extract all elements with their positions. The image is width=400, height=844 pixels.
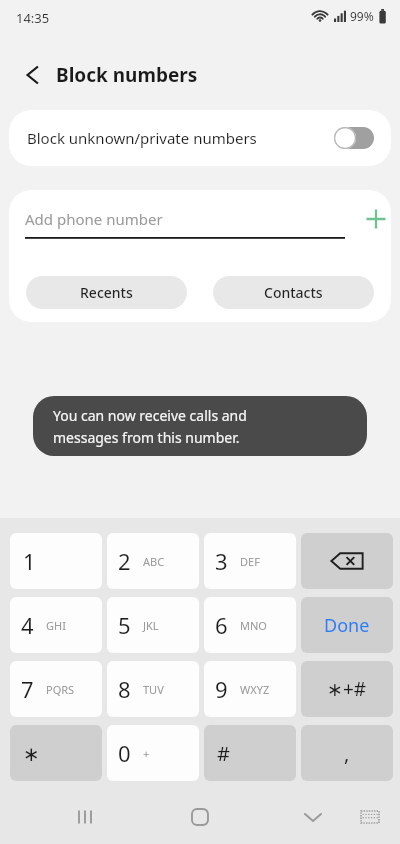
staticText: 14:35	[16, 9, 50, 27]
button[interactable]: Home	[183, 802, 217, 832]
button[interactable]: Back	[16, 58, 50, 92]
staticText: GHI	[46, 618, 66, 633]
staticText: 3	[215, 546, 228, 576]
staticText: ∗	[23, 742, 40, 765]
button[interactable]: Change keyboard	[355, 802, 385, 832]
staticText: Recents	[80, 283, 133, 302]
button[interactable]: Block unknown/private numbers	[9, 110, 391, 166]
button[interactable]: Recents	[68, 802, 102, 832]
button[interactable]: 9	[204, 661, 296, 717]
staticText: #	[217, 740, 230, 767]
staticText: messages from this number.	[53, 428, 240, 447]
staticText: MNO	[240, 618, 267, 633]
button[interactable]: 4	[10, 597, 102, 653]
staticText: 99%	[350, 8, 374, 24]
staticText: You can now receive calls and	[53, 406, 247, 425]
button[interactable]: 0	[107, 725, 199, 781]
staticText: 2	[118, 546, 131, 576]
button[interactable]: 8	[107, 661, 199, 717]
button[interactable]: #	[204, 725, 296, 781]
button[interactable]: ∗	[10, 725, 102, 781]
staticText: JKL	[143, 618, 159, 633]
button[interactable]: Done	[301, 597, 393, 653]
staticText: 8	[118, 674, 131, 704]
button[interactable]: ∗+#	[301, 661, 393, 717]
staticText: Block unknown/private numbers	[27, 128, 257, 148]
staticText: Contacts	[264, 283, 323, 302]
staticText: 4	[21, 610, 34, 640]
staticText: +	[143, 746, 150, 761]
staticText: TUV	[143, 682, 164, 697]
button[interactable]: Recents	[26, 276, 187, 309]
staticText: ABC	[143, 554, 165, 569]
button[interactable]: 7	[10, 661, 102, 717]
staticText: 1	[23, 546, 36, 576]
button[interactable]: 3	[204, 533, 296, 589]
button[interactable]: Add number	[358, 200, 391, 238]
button[interactable]: ,	[301, 725, 393, 781]
staticText: ∗+#	[327, 676, 367, 702]
button[interactable]: 2	[107, 533, 199, 589]
button[interactable]: 5	[107, 597, 199, 653]
staticText: ,	[344, 740, 350, 767]
staticText: 6	[215, 610, 228, 640]
button[interactable]: Contacts	[213, 276, 374, 309]
staticText: 5	[118, 610, 131, 640]
button[interactable]: 6	[204, 597, 296, 653]
staticText: Add phone number	[25, 209, 163, 229]
staticText: PQRS	[46, 682, 75, 697]
button[interactable]: 1	[10, 533, 102, 589]
staticText: No blocked numbers	[131, 416, 269, 435]
staticText: Done	[324, 613, 370, 638]
staticText: 0	[118, 738, 131, 768]
staticText: WXYZ	[240, 682, 270, 697]
button[interactable]: Backspace	[301, 533, 393, 589]
staticText: Block numbers	[56, 62, 198, 88]
staticText: 9	[215, 674, 228, 704]
button[interactable]: Hide keyboard	[296, 802, 330, 832]
staticText: 7	[21, 674, 34, 704]
staticText: DEF	[240, 554, 260, 569]
